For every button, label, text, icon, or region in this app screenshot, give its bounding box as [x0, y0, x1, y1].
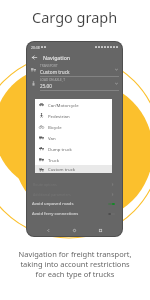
button[interactable]: Avoid ferry connections — [32, 209, 115, 219]
staticText: LOAD ON AXLE, T — [40, 78, 66, 82]
staticText: Bicycle — [48, 124, 62, 130]
staticText: Cargo graph — [32, 7, 118, 27]
staticText: Car/Motorcycle — [48, 102, 79, 108]
staticText: Navigation — [43, 54, 71, 61]
staticText: 20:38 — [31, 45, 40, 50]
button[interactable]: Back — [44, 226, 53, 235]
button[interactable]: TRANSPORT — [27, 63, 122, 77]
button[interactable]: Car/Motorcycle — [35, 99, 112, 110]
staticText: Dump truck — [48, 146, 72, 152]
button[interactable]: Bicycle — [35, 121, 112, 132]
staticText: Pedestrian — [48, 113, 70, 119]
button[interactable]: Truck — [35, 154, 112, 165]
button[interactable]: Home — [70, 226, 79, 235]
button[interactable]: Back — [30, 53, 39, 62]
staticText: Avoid ferry connections — [32, 211, 79, 217]
button[interactable]: LOAD ON AXLE, T — [27, 77, 122, 91]
staticText: Truck — [48, 157, 59, 163]
button[interactable]: Pedestrian — [35, 110, 112, 121]
staticText: 25.00 — [40, 83, 52, 89]
staticText: Custom truck — [40, 69, 70, 75]
button[interactable]: Dump truck — [35, 143, 112, 154]
staticText: Navigation for freight transport, taking… — [18, 249, 132, 279]
staticText: Avoid unpaved roads — [32, 201, 74, 207]
staticText: Custom truck — [48, 166, 76, 172]
button[interactable]: Recent apps — [96, 226, 105, 235]
button[interactable]: Avoid unpaved roads — [32, 199, 115, 209]
staticText: TRANSPORT — [40, 64, 58, 68]
button[interactable]: Custom truck — [35, 165, 112, 173]
staticText: Van — [48, 135, 56, 141]
button[interactable]: Van — [35, 132, 112, 143]
